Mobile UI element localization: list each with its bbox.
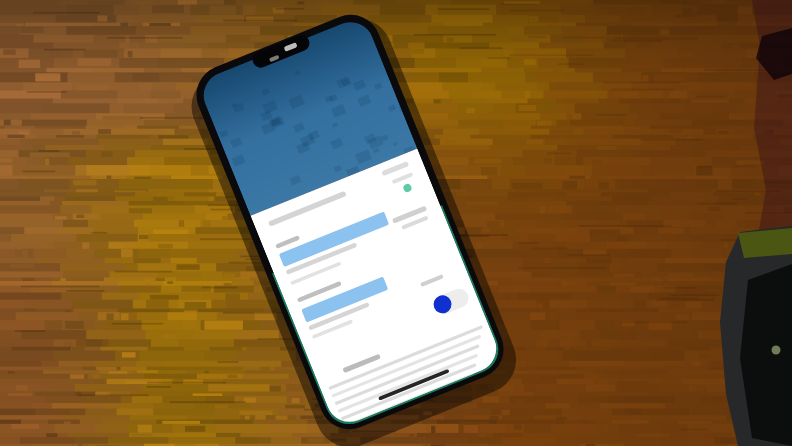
button[interactable]: First highlighted row: [276, 210, 400, 254]
button[interactable]: Home indicator: [392, 360, 484, 400]
button[interactable]: Second highlighted row: [300, 272, 412, 316]
button[interactable]: Toggle setting: [450, 288, 494, 326]
